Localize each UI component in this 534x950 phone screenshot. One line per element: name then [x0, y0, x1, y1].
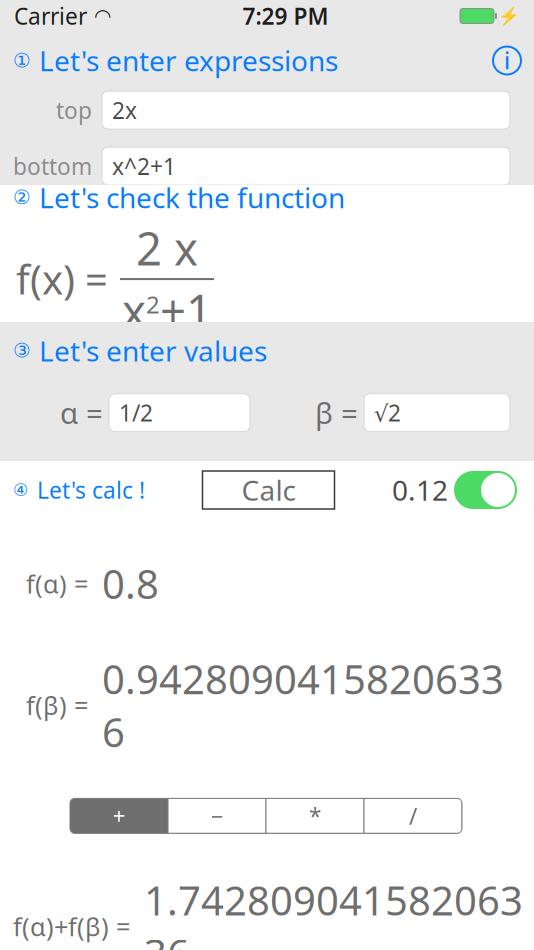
staticText: ①: [13, 49, 31, 72]
staticText: Calc: [241, 471, 295, 509]
staticText: ④: [13, 480, 29, 500]
staticText: Let's enter values: [39, 332, 267, 369]
staticText: 2: [146, 288, 160, 320]
staticText: ②: [13, 186, 31, 209]
staticText: 1/2: [119, 398, 153, 428]
staticText: Let's enter expressions: [39, 42, 338, 79]
staticText: Let's calc !: [37, 475, 145, 505]
staticText: *: [309, 801, 321, 831]
staticText: β =: [315, 393, 358, 432]
staticText: 7:29 PM: [242, 1, 328, 31]
staticText: 0.94280904158206336: [102, 652, 504, 758]
staticText: x^2+1: [112, 151, 176, 181]
button[interactable]: −: [168, 798, 266, 833]
staticText: 2x: [112, 95, 137, 125]
staticText: i: [504, 45, 510, 75]
staticText: f(β) =: [26, 688, 88, 722]
staticText: 1.74280904158206336: [144, 873, 523, 950]
staticText: 0.8: [102, 557, 159, 610]
staticText: top: [56, 95, 92, 125]
button[interactable]: /: [364, 798, 462, 833]
staticText: ③: [13, 339, 31, 362]
staticText: bottom: [13, 151, 92, 181]
staticText: f(α)+f(β) =: [13, 910, 130, 943]
staticText: +1: [160, 280, 212, 340]
staticText: Carrier: [14, 1, 87, 31]
staticText: Let's check the function: [39, 179, 345, 216]
staticText: /: [409, 801, 417, 831]
button[interactable]: Calc: [202, 471, 334, 509]
staticText: f(x) =: [16, 252, 108, 306]
staticText: ◠: [94, 5, 111, 27]
staticText: √2: [374, 398, 401, 428]
button[interactable]: Precision toggle: [454, 471, 517, 509]
staticText: α =: [60, 393, 103, 432]
staticText: −: [210, 801, 223, 831]
staticText: f(α) =: [26, 567, 88, 600]
staticText: 2 x: [136, 218, 198, 278]
button[interactable]: Information: [493, 46, 521, 74]
staticText: ⚡: [498, 6, 520, 26]
button[interactable]: +: [70, 798, 168, 833]
staticText: +: [112, 801, 125, 831]
button[interactable]: *: [266, 798, 364, 833]
staticText: 0.12: [392, 471, 448, 509]
staticText: x: [122, 280, 146, 340]
